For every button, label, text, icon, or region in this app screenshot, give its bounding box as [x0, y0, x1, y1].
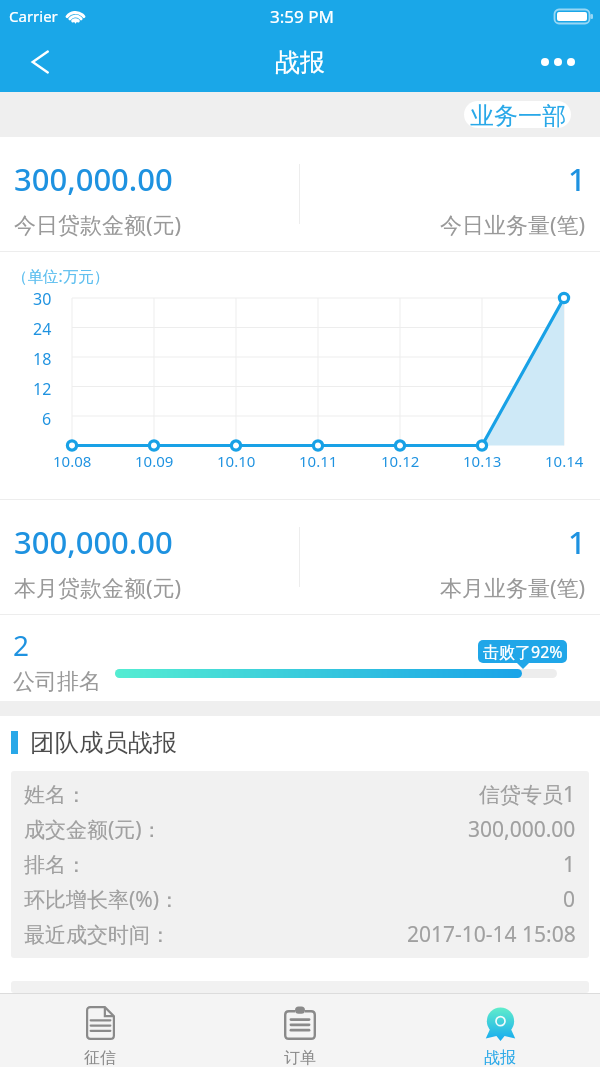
staticText: 6 [42, 408, 52, 428]
button[interactable]: 姓名： [11, 771, 589, 958]
staticText: 0 [563, 885, 576, 914]
staticText: 2 [13, 626, 30, 664]
button[interactable]: 战报 [400, 994, 600, 1067]
staticText: 姓名： [24, 782, 87, 808]
staticText: 信贷专员1 [479, 780, 576, 809]
staticText: 10.10 [217, 451, 256, 471]
staticText: 成交金额(元)： [24, 815, 163, 844]
staticText: 订单 [284, 1048, 316, 1067]
button[interactable]: 订单 [200, 994, 400, 1067]
button[interactable]: 征信 [0, 994, 200, 1067]
staticText: 300,000.00 [14, 158, 173, 200]
staticText: 本月业务量(笔) [440, 572, 586, 602]
staticText: （单位:万元） [12, 265, 110, 286]
staticText: 10.09 [135, 451, 174, 471]
staticText: 300,000.00 [14, 521, 173, 563]
staticText: 300,000.00 [468, 815, 576, 844]
staticText: 今日业务量(笔) [440, 209, 586, 239]
staticText: 排名： [24, 852, 87, 878]
staticText: 1 [563, 850, 576, 879]
staticText: 10.13 [463, 451, 502, 471]
staticText: 团队成员战报 [30, 727, 177, 758]
staticText: Carrier [9, 6, 58, 26]
staticText: 2017-10-14 15:08 [407, 920, 576, 949]
button[interactable]: 业务一部 [464, 101, 571, 128]
button[interactable]: More options [524, 33, 600, 91]
staticText: 业务一部 [470, 101, 566, 128]
staticText: 10.08 [53, 451, 92, 471]
staticText: 18 [33, 348, 52, 370]
staticText: 击败了92% [483, 641, 563, 663]
staticText: 环比增长率(%)： [24, 885, 181, 914]
staticText: 战报 [275, 47, 325, 78]
staticText: 征信 [84, 1048, 116, 1067]
staticText: 1 [568, 158, 586, 200]
staticText: 今日贷款金额(元) [14, 209, 182, 239]
button[interactable]: Back [0, 33, 58, 91]
staticText: 10.12 [381, 451, 420, 471]
staticText: 24 [33, 318, 52, 340]
staticText: 公司排名 [13, 668, 101, 696]
staticText: 30 [33, 288, 52, 310]
staticText: 10.11 [299, 451, 338, 471]
staticText: 12 [33, 378, 52, 400]
staticText: 1 [568, 521, 586, 563]
staticText: 3:59 PM [270, 5, 334, 28]
staticText: 战报 [484, 1048, 516, 1067]
staticText: 最近成交时间： [24, 922, 171, 948]
staticText: 10.14 [545, 451, 584, 471]
staticText: 本月贷款金额(元) [14, 572, 182, 602]
